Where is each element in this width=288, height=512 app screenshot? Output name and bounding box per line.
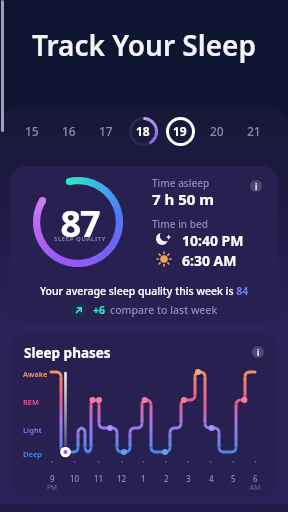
staticText: SLEEP QUALITY [13,235,147,243]
staticText: 9 [50,473,55,484]
staticText: 15 [25,123,39,139]
staticText: Deep [23,449,42,459]
staticText: Time in bed [152,217,208,231]
staticText: Awake [23,369,48,379]
staticText: 10:40 PM [182,231,244,250]
button[interactable]: 16 [53,115,85,147]
button[interactable]: i [250,180,262,192]
staticText: i [257,347,260,358]
staticText: AM [250,483,261,492]
staticText: REM [23,397,39,407]
staticText: Light [23,425,42,435]
button[interactable]: 87 [10,166,278,322]
staticText: 21 [247,123,261,139]
staticText: 3 [186,473,191,484]
button[interactable]: 21 [238,115,270,147]
button[interactable]: 15 [16,115,48,147]
staticText: 12 [117,473,127,484]
button[interactable]: 18 [127,115,159,147]
staticText: 16 [62,123,76,139]
staticText: 7 h 50 m [152,189,214,209]
button[interactable]: i [252,346,264,358]
staticText: Time asleep [152,176,210,190]
staticText: compare to last week [110,303,218,317]
staticText: 10 [70,473,80,484]
staticText: Sleep phases [24,344,111,362]
staticText: i [255,181,258,192]
staticText: 20 [210,123,224,139]
staticText: Your average sleep quality this week is … [40,284,249,298]
staticText: 19 [173,123,187,139]
button[interactable]: 20 [201,115,233,147]
staticText: 11 [94,473,104,484]
button[interactable]: Sleep phases [10,334,278,497]
staticText: 17 [99,123,113,139]
button[interactable]: +6 [10,302,278,318]
staticText: 18 [136,123,150,139]
staticText: 6:30 AM [182,251,237,270]
staticText: 6 [253,473,258,484]
staticText: 5 [231,473,236,484]
button[interactable]: 17 [90,115,122,147]
staticText: 87 [13,199,147,248]
staticText: PM [47,483,57,492]
button[interactable]: 19 [164,115,196,147]
staticText: 2 [164,473,169,484]
staticText: +6 [93,303,106,317]
staticText: Track Your Sleep [32,26,256,64]
staticText: 1 [141,473,146,484]
staticText: 4 [209,473,214,484]
